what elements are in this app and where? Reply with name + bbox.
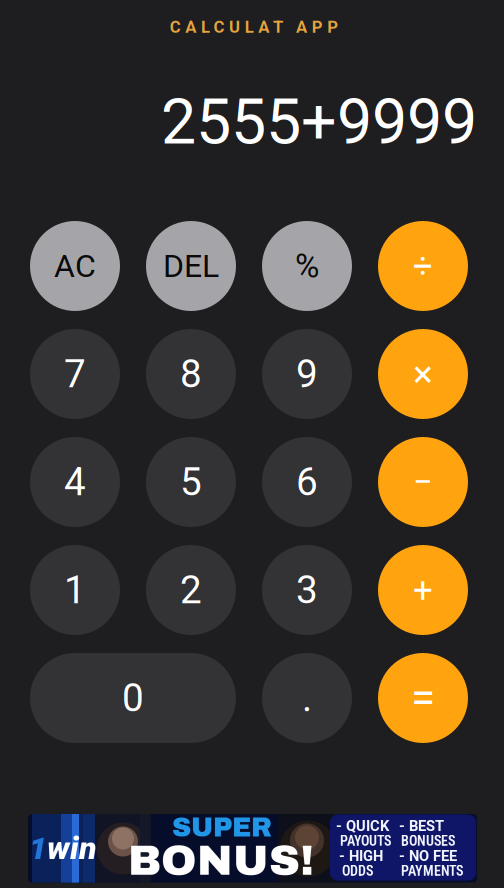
button[interactable]: ÷ [378, 221, 468, 311]
staticText: PAYOUTS [340, 833, 391, 849]
button[interactable]: 6 [262, 437, 352, 527]
staticText: - QUICK [336, 817, 389, 835]
button[interactable]: 3 [262, 545, 352, 635]
button[interactable]: 9 [262, 329, 352, 419]
staticText: × [413, 352, 433, 396]
staticText: 1 [64, 567, 86, 613]
staticText: BONUS! [128, 837, 314, 884]
button[interactable]: 1win Super Bonus advertisement [28, 814, 477, 883]
staticText: . [302, 675, 312, 721]
staticText: - HIGH [339, 847, 383, 865]
staticText: 9 [296, 351, 318, 397]
staticText: 3 [296, 567, 318, 613]
button[interactable]: AC [30, 221, 120, 311]
button[interactable]: % [262, 221, 352, 311]
staticText: BONUSES [401, 833, 455, 849]
staticText: 6 [296, 459, 318, 505]
staticText: ÷ [413, 246, 433, 286]
button[interactable]: 5 [146, 437, 236, 527]
button[interactable]: 0 [30, 653, 236, 743]
staticText: 2 [180, 567, 202, 613]
staticText: 1 [29, 830, 47, 867]
staticText: 7 [64, 351, 86, 397]
staticText: AC [54, 247, 96, 285]
staticText: + [413, 570, 433, 610]
button[interactable]: 7 [30, 329, 120, 419]
staticText: 8 [180, 351, 202, 397]
button[interactable]: 1 [30, 545, 120, 635]
staticText: SUPER [172, 813, 272, 842]
staticText: 4 [64, 459, 86, 505]
staticText: − [413, 462, 433, 502]
button[interactable]: 4 [30, 437, 120, 527]
staticText: % [295, 246, 319, 286]
staticText: - NO FEE [399, 847, 457, 865]
button[interactable]: 8 [146, 329, 236, 419]
button[interactable]: DEL [146, 221, 236, 311]
button[interactable]: × [378, 329, 468, 419]
button[interactable]: + [378, 545, 468, 635]
button[interactable]: − [378, 437, 468, 527]
staticText: - BEST [399, 817, 444, 835]
button[interactable]: = [378, 653, 468, 743]
staticText: DEL [163, 247, 219, 285]
staticText: win [47, 830, 97, 867]
staticText: ODDS [342, 863, 373, 879]
staticText: PAYMENTS [401, 863, 463, 879]
staticText: = [411, 672, 435, 724]
staticText: CALCULAT APP [170, 17, 338, 37]
button[interactable]: . [262, 653, 352, 743]
button[interactable]: 2 [146, 545, 236, 635]
staticText: 5 [180, 459, 202, 505]
staticText: 2555+9999 [161, 85, 477, 159]
staticText: 0 [122, 675, 144, 721]
